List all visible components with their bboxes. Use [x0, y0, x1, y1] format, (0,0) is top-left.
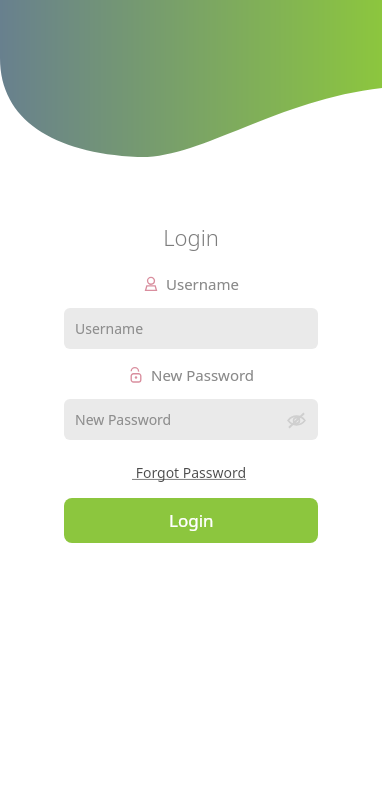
staticText: Login: [169, 509, 214, 532]
button[interactable]: Forgot Password: [132, 463, 250, 482]
staticText: Login: [163, 222, 219, 252]
button[interactable]: Toggle password visibility: [284, 408, 308, 432]
staticText: New Password: [75, 410, 172, 429]
staticText: Username: [166, 274, 239, 294]
button[interactable]: Login: [64, 498, 318, 543]
staticText: Username: [75, 319, 144, 338]
button[interactable]: Username: [64, 308, 318, 349]
staticText: Forgot Password: [132, 463, 250, 482]
button[interactable]: New Password: [64, 399, 318, 440]
staticText: New Password: [151, 365, 255, 385]
